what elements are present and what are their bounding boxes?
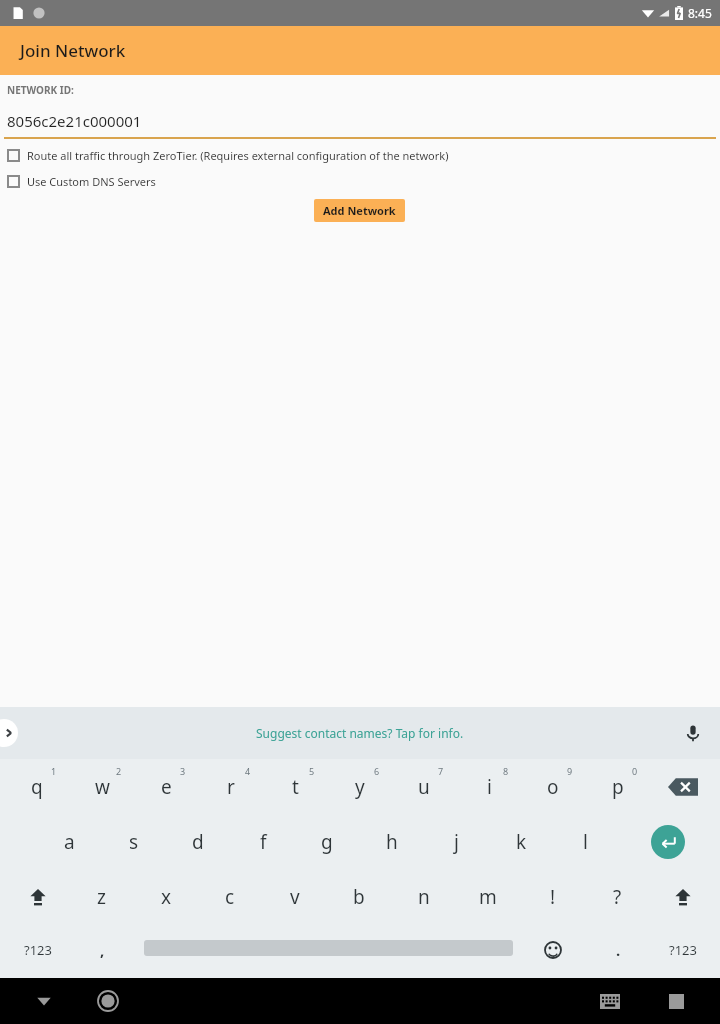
staticText: , <box>100 940 105 960</box>
staticText: q <box>31 774 43 800</box>
staticText: n <box>418 884 430 910</box>
staticText: 8:45 <box>688 5 712 21</box>
staticText: r <box>227 774 235 800</box>
staticText: m <box>479 884 497 910</box>
staticText: ! <box>550 884 556 910</box>
button[interactable]: Shift <box>10 869 65 924</box>
staticText: Add Network <box>323 203 396 218</box>
button[interactable]: y <box>330 759 390 814</box>
button[interactable]: Back <box>22 979 66 1023</box>
button[interactable]: Use Custom DNS Servers <box>0 174 720 189</box>
button[interactable]: ?123 <box>10 924 65 976</box>
staticText: k <box>516 829 527 855</box>
button[interactable]: Add Network <box>314 199 405 222</box>
button[interactable]: e <box>136 759 196 814</box>
staticText: a <box>64 829 75 855</box>
staticText: l <box>583 829 588 855</box>
button[interactable]: a <box>39 814 99 869</box>
button[interactable]: ! <box>523 869 583 924</box>
staticText: ?123 <box>669 941 697 959</box>
staticText: d <box>192 829 204 855</box>
staticText: b <box>353 884 365 910</box>
staticText: o <box>547 774 559 800</box>
staticText: ?123 <box>24 941 52 959</box>
button[interactable]: , <box>75 924 130 976</box>
button[interactable]: h <box>362 814 422 869</box>
button[interactable]: w <box>72 759 132 814</box>
button[interactable]: b <box>329 869 389 924</box>
button[interactable]: k <box>491 814 551 869</box>
button[interactable]: u <box>394 759 454 814</box>
button[interactable]: g <box>297 814 357 869</box>
staticText: 4 <box>245 765 251 777</box>
button[interactable]: Recent apps <box>654 979 698 1023</box>
button[interactable]: m <box>458 869 518 924</box>
staticText: u <box>418 774 430 800</box>
button[interactable]: t <box>265 759 325 814</box>
staticText: 1 <box>51 765 57 777</box>
staticText: Suggest contact names? Tap for info. <box>256 725 464 741</box>
button[interactable]: Shift <box>655 869 710 924</box>
staticText: 6 <box>374 765 380 777</box>
staticText: 2 <box>116 765 122 777</box>
staticText: z <box>97 884 106 910</box>
staticText: g <box>321 829 333 855</box>
button[interactable]: Emoji <box>526 924 580 976</box>
button[interactable]: Home <box>86 979 130 1023</box>
button[interactable]: Backspace <box>655 759 710 814</box>
staticText: f <box>260 829 267 855</box>
staticText: 8056c2e21c000001 <box>7 111 142 131</box>
button[interactable]: Voice input <box>682 722 704 744</box>
staticText: w <box>95 774 110 800</box>
button[interactable]: ? <box>587 869 647 924</box>
button[interactable]: i <box>459 759 519 814</box>
staticText: Join Network <box>20 39 126 62</box>
staticText: 3 <box>180 765 186 777</box>
staticText: x <box>161 884 172 910</box>
button[interactable]: Expand suggestions <box>0 719 18 747</box>
staticText: e <box>161 774 172 800</box>
button[interactable]: s <box>104 814 164 869</box>
staticText: t <box>292 774 299 800</box>
button[interactable]: l <box>555 814 615 869</box>
button[interactable]: v <box>265 869 325 924</box>
button[interactable]: ?123 <box>655 924 710 976</box>
staticText: Use Custom DNS Servers <box>27 174 156 189</box>
staticText: . <box>616 940 621 960</box>
staticText: 7 <box>438 765 444 777</box>
staticText: ? <box>613 884 622 910</box>
button[interactable]: p <box>588 759 648 814</box>
staticText: 0 <box>632 765 638 777</box>
button[interactable]: o <box>523 759 583 814</box>
staticText: j <box>454 829 459 855</box>
button[interactable]: q <box>7 759 67 814</box>
button[interactable]: n <box>394 869 454 924</box>
button[interactable]: Switch keyboard <box>588 979 632 1023</box>
staticText: v <box>290 884 300 910</box>
button[interactable]: c <box>200 869 260 924</box>
staticText: 8 <box>503 765 509 777</box>
staticText: 9 <box>567 765 573 777</box>
button[interactable]: r <box>201 759 261 814</box>
button[interactable]: j <box>426 814 486 869</box>
staticText: c <box>225 884 235 910</box>
staticText: h <box>386 829 398 855</box>
staticText: p <box>612 774 624 800</box>
button[interactable]: x <box>136 869 196 924</box>
staticText: s <box>129 829 139 855</box>
staticText: 5 <box>309 765 315 777</box>
staticText: y <box>355 774 365 800</box>
staticText: Route all traffic through ZeroTier. (Req… <box>27 148 449 163</box>
button[interactable]: z <box>71 869 131 924</box>
button[interactable]: Route all traffic through ZeroTier. (Req… <box>0 148 720 163</box>
staticText: NETWORK ID: <box>7 83 74 97</box>
button[interactable]: f <box>233 814 293 869</box>
button[interactable]: Enter <box>640 814 695 869</box>
button[interactable]: d <box>168 814 228 869</box>
button[interactable]: . <box>591 924 646 976</box>
staticText: i <box>487 774 492 800</box>
button[interactable]: Suggest contact names? Tap for info. <box>252 721 468 745</box>
